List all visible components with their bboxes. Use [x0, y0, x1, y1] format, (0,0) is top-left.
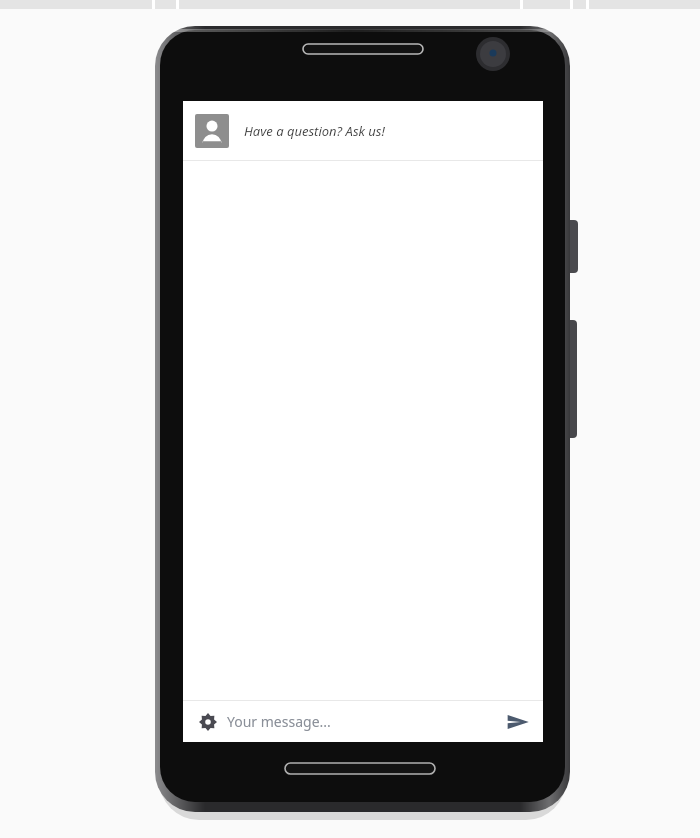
button[interactable]: Your message... — [227, 701, 498, 742]
button[interactable]: Settings — [194, 708, 222, 736]
button[interactable]: Have a question? Ask us! — [183, 101, 543, 160]
staticText: Have a question? Ask us! — [244, 122, 385, 140]
button[interactable]: Send — [498, 702, 538, 742]
staticText: Your message... — [227, 712, 331, 731]
